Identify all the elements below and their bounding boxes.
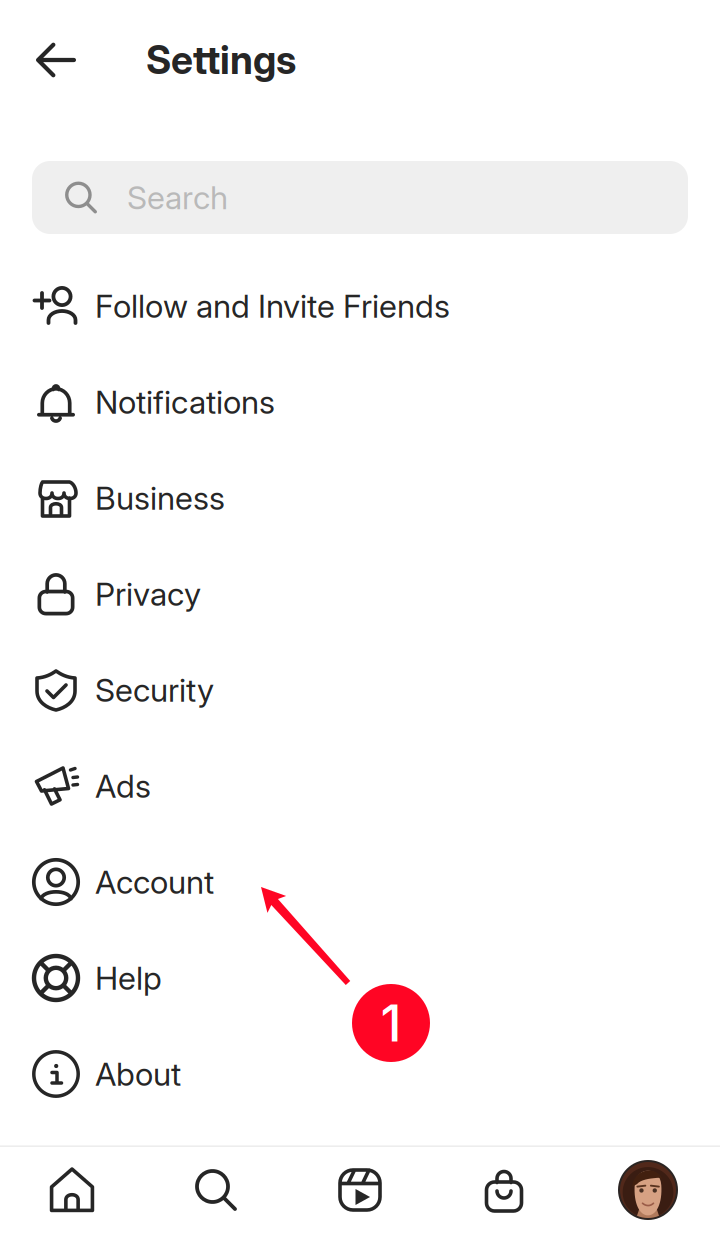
staticText: Ads	[95, 767, 151, 805]
button[interactable]: Business	[0, 450, 720, 546]
button[interactable]: Follow and Invite Friends	[0, 258, 720, 354]
button[interactable]: Reels	[288, 1147, 432, 1233]
staticText: Privacy	[95, 575, 201, 613]
button[interactable]: Privacy	[0, 546, 720, 642]
button[interactable]: Account	[0, 834, 720, 930]
button[interactable]: Ads	[0, 738, 720, 834]
staticText: Security	[95, 671, 214, 709]
button[interactable]: Security	[0, 642, 720, 738]
button[interactable]: Back	[20, 24, 92, 96]
staticText: Follow and Invite Friends	[95, 287, 450, 325]
staticText: 1	[380, 992, 401, 1054]
button[interactable]: Search	[32, 161, 688, 234]
button[interactable]: Home	[0, 1147, 144, 1233]
staticText: Search	[127, 178, 228, 217]
button[interactable]: Profile	[576, 1147, 720, 1233]
button[interactable]: Help	[0, 930, 720, 1026]
button[interactable]: Notifications	[0, 354, 720, 450]
staticText: Settings	[146, 37, 296, 83]
staticText: Notifications	[95, 383, 275, 421]
staticText: Business	[95, 479, 225, 517]
button[interactable]: Shop	[432, 1147, 576, 1233]
staticText: About	[95, 1055, 181, 1093]
staticText: Account	[95, 863, 214, 901]
staticText: Help	[95, 959, 162, 997]
button[interactable]: Search	[144, 1147, 288, 1233]
button[interactable]: About	[0, 1026, 720, 1122]
